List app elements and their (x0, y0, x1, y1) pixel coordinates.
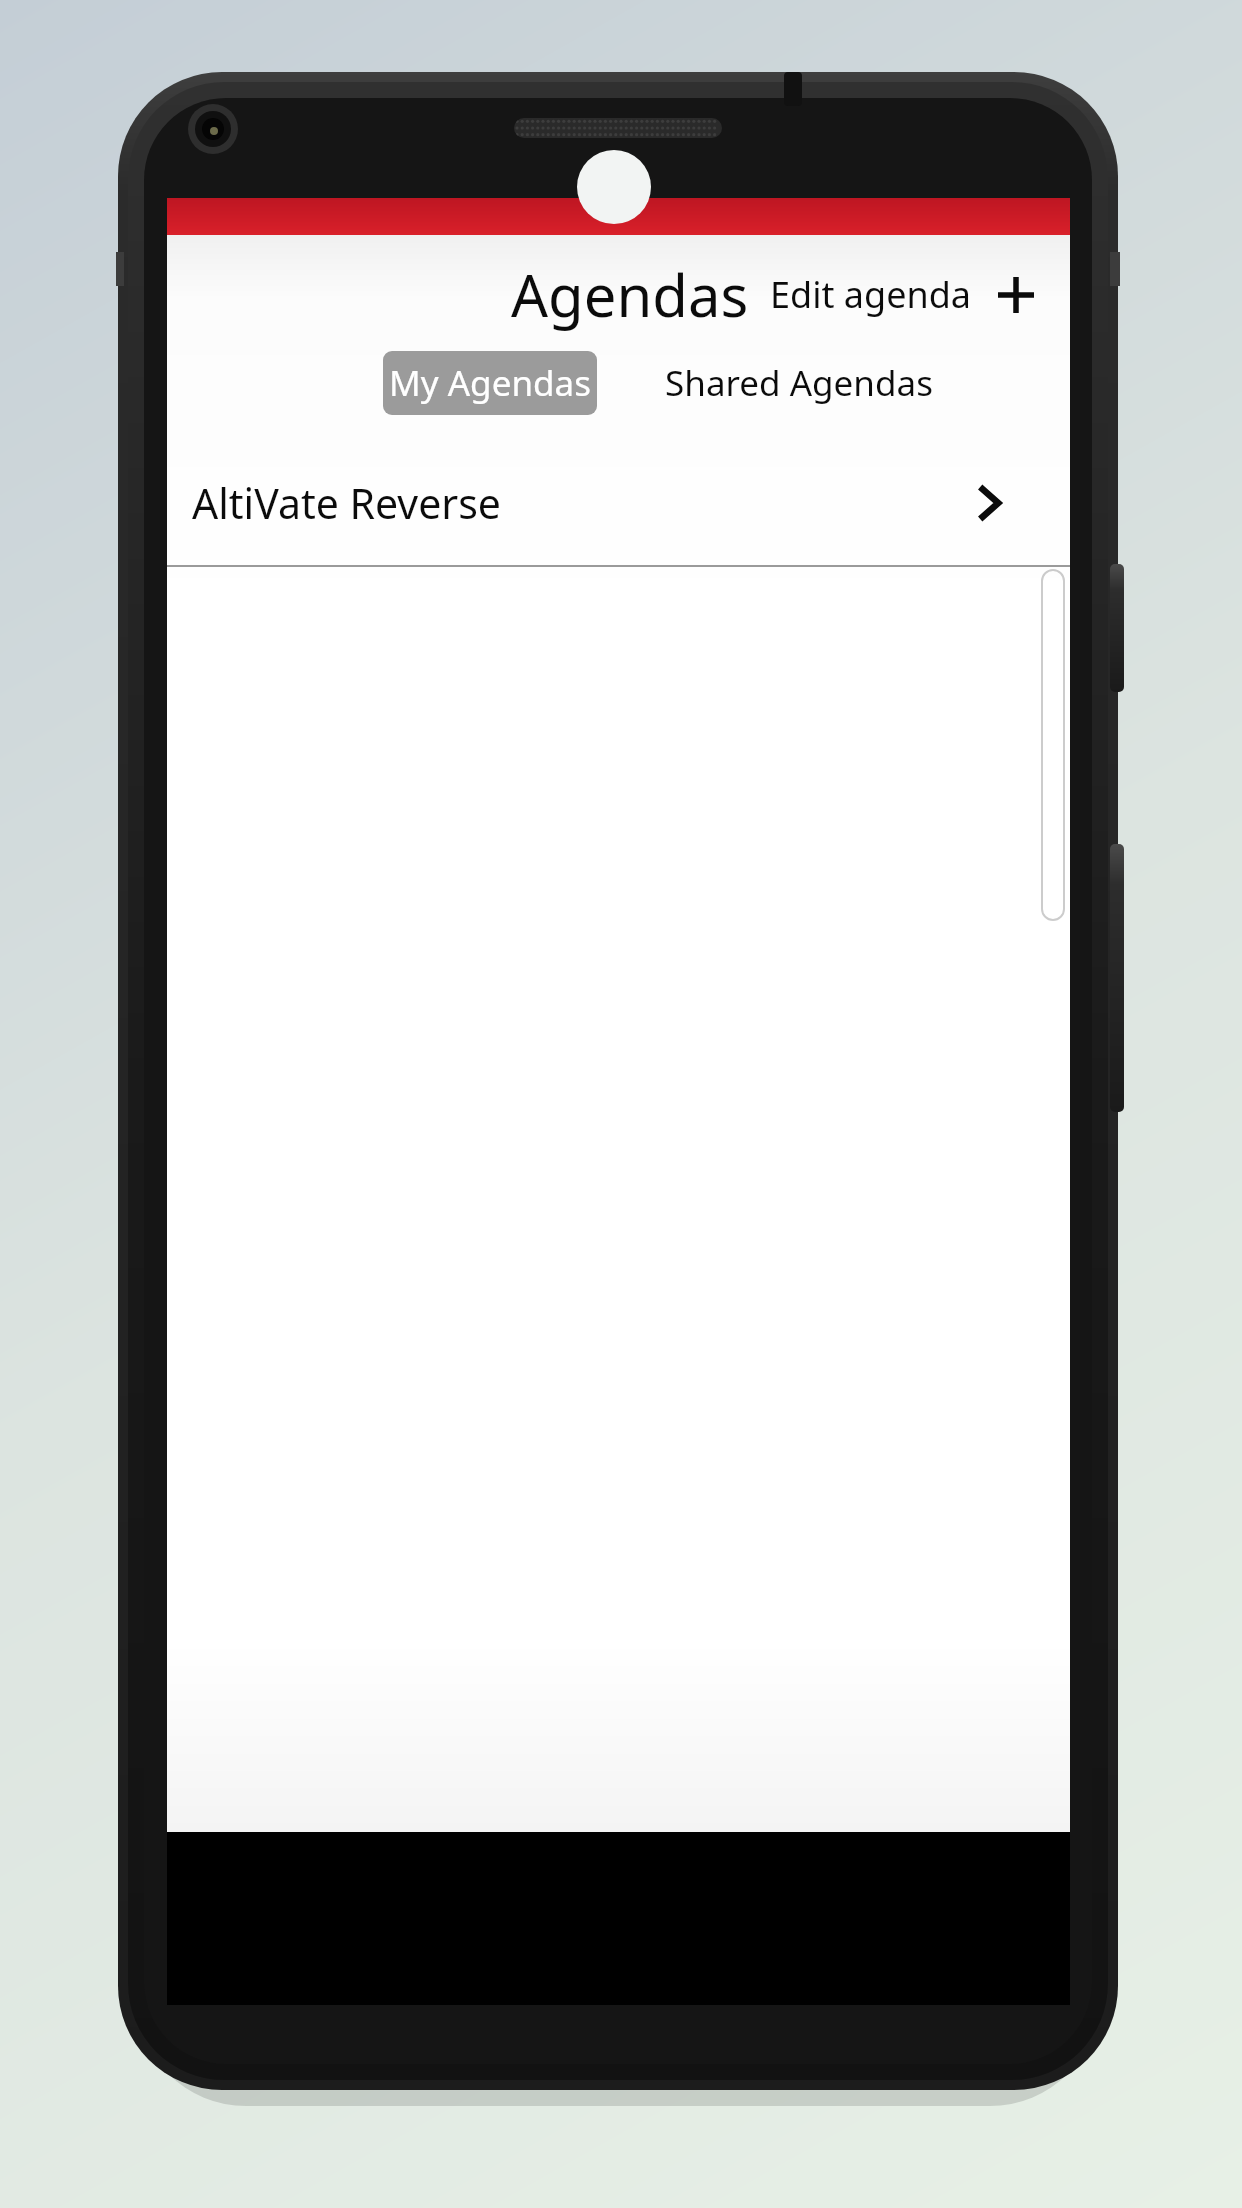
button[interactable]: Edit agenda (764, 262, 978, 327)
button[interactable]: My Agendas (383, 351, 597, 415)
button[interactable]: Add agenda (988, 267, 1044, 323)
staticText: My Agendas (389, 359, 591, 407)
button[interactable]: AltiVate Reverse (167, 441, 1070, 565)
staticText: Agendas (511, 255, 749, 334)
staticText: AltiVate Reverse (192, 475, 501, 531)
button[interactable]: Shared Agendas (659, 351, 939, 415)
other: Open AltiVate Reverse (962, 475, 1018, 531)
staticText: Edit agenda (770, 270, 972, 319)
staticText: Shared Agendas (665, 359, 933, 407)
